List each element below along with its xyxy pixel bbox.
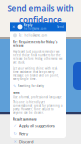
staticText: Gmail bbox=[17, 27, 24, 30]
staticText: ✓ bbox=[13, 123, 16, 128]
staticText: Retry bbox=[19, 131, 28, 136]
staticText: confidence bbox=[19, 15, 62, 25]
staticText: Send bbox=[57, 25, 64, 29]
staticText: To: hello@acme.com bbox=[18, 34, 46, 37]
staticText: ↻ bbox=[13, 131, 16, 136]
staticText: hello@acme.com bbox=[24, 27, 46, 30]
staticText: Reply bbox=[24, 23, 33, 27]
button[interactable]: ↻ bbox=[13, 130, 63, 138]
button[interactable]: ✕ bbox=[13, 138, 63, 144]
staticText: Result summary bbox=[13, 118, 37, 121]
button[interactable]: ✓ bbox=[13, 122, 63, 130]
staticText: Apply all suggestions bbox=[19, 123, 55, 128]
staticText: ✕ bbox=[12, 25, 15, 29]
staticText: Let your writing shine with real-time as… bbox=[13, 67, 59, 81]
staticText: Use a formal, professional language bbox=[13, 95, 62, 99]
staticText: ✎ bbox=[13, 84, 16, 88]
staticText: ✕ bbox=[13, 139, 16, 144]
staticText: Re: Requirements for Friday's release bbox=[13, 40, 57, 47]
staticText: Rewriting for clarity bbox=[17, 84, 43, 88]
staticText: Discard bbox=[19, 139, 33, 144]
staticText: Tone bbox=[13, 91, 20, 94]
staticText: Hey team! Just a quick reminder we need … bbox=[13, 50, 63, 64]
staticText: Send emails with bbox=[7, 3, 73, 14]
staticText: This one is friendly yet conversational;… bbox=[13, 100, 62, 115]
